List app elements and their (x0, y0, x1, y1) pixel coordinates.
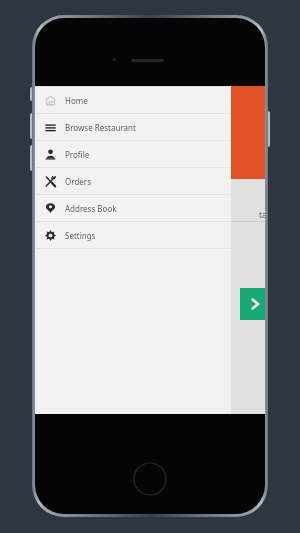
staticText: Orders (65, 176, 91, 187)
staticText: Settings (65, 230, 96, 241)
button[interactable]: Orders (35, 168, 231, 194)
staticText: Address Book (65, 203, 117, 214)
button[interactable]: Home (35, 87, 231, 113)
button[interactable]: Profile (35, 141, 231, 167)
staticText: ta (259, 209, 265, 220)
button[interactable]: Next (240, 288, 265, 320)
button[interactable]: Browse Restaurant (35, 114, 231, 140)
button[interactable]: Address Book (35, 195, 231, 221)
staticText: Profile (65, 149, 90, 160)
button[interactable]: Settings (35, 222, 231, 248)
staticText: Browse Restaurant (65, 122, 136, 133)
staticText: Home (65, 95, 88, 106)
